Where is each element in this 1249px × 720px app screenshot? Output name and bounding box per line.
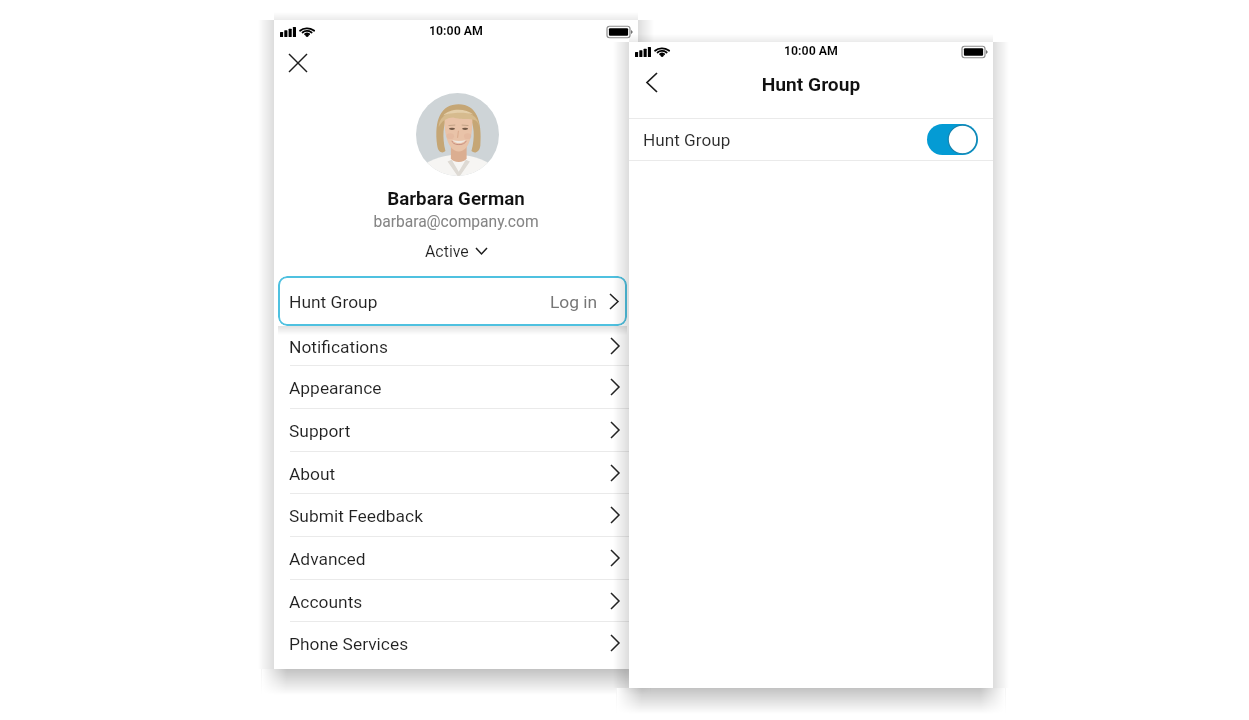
button[interactable]: Support — [274, 408, 638, 451]
button[interactable]: Phone Services — [274, 621, 638, 664]
button[interactable]: Advanced — [274, 536, 638, 579]
staticText: Submit Feedback — [289, 506, 423, 526]
button[interactable]: Active — [274, 240, 638, 262]
staticText: 10:00 AM — [429, 24, 483, 38]
button[interactable]: Submit Feedback — [274, 493, 638, 536]
staticText: Hunt Group — [643, 130, 731, 150]
button[interactable]: About — [274, 451, 638, 494]
button[interactable]: Notifications — [274, 326, 638, 366]
staticText: Hunt Group — [289, 292, 378, 312]
staticText: About — [289, 464, 336, 484]
staticText: Advanced — [289, 549, 366, 569]
staticText: Phone Services — [289, 634, 409, 654]
button[interactable]: Close — [289, 54, 307, 72]
staticText: barbara@company.com — [274, 213, 638, 231]
button[interactable]: Appearance — [274, 365, 638, 408]
staticText: Hunt Group — [629, 73, 993, 96]
staticText: Appearance — [289, 378, 382, 398]
staticText: Notifications — [289, 337, 388, 357]
staticText: Accounts — [289, 592, 363, 612]
button[interactable]: Hunt Group toggle — [927, 124, 978, 155]
staticText: 10:00 AM — [784, 44, 838, 58]
staticText: Active — [425, 242, 469, 261]
button[interactable]: Hunt Group — [278, 276, 627, 326]
button[interactable]: Hunt Group — [629, 119, 993, 160]
staticText: Barbara German — [274, 188, 638, 210]
button[interactable]: Back — [647, 73, 657, 92]
staticText: Log in — [550, 292, 598, 312]
button[interactable]: Accounts — [274, 579, 638, 622]
staticText: Support — [289, 421, 351, 441]
